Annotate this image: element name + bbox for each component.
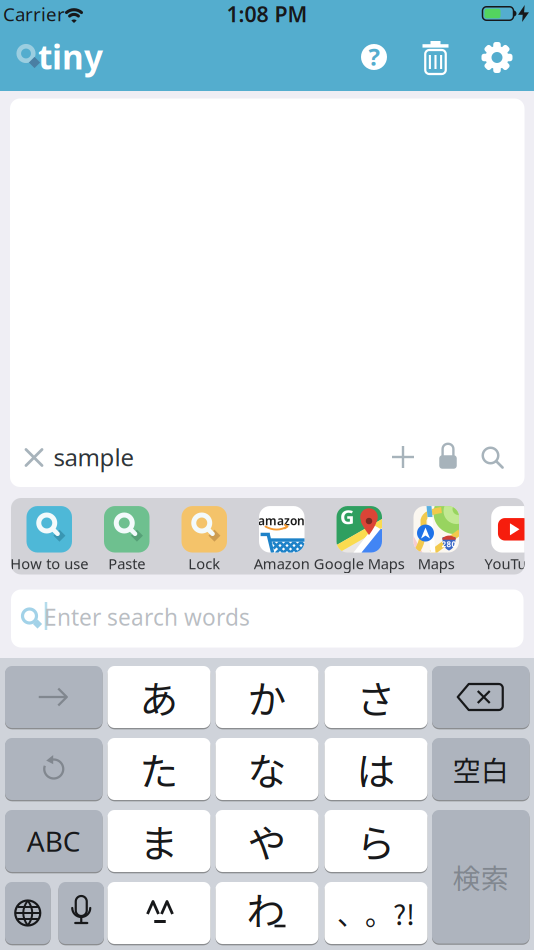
- button[interactable]: [415, 35, 455, 79]
- staticText: How to use: [10, 554, 88, 573]
- staticText: 検索: [453, 856, 509, 897]
- staticText: sample: [53, 441, 134, 473]
- staticText: た: [139, 741, 178, 797]
- button[interactable]: [5, 666, 102, 728]
- button[interactable]: How to use: [11, 498, 88, 574]
- staticText: さ: [356, 669, 395, 725]
- staticText: は: [356, 741, 395, 797]
- staticText: Google Maps: [314, 554, 405, 573]
- button[interactable]: [476, 441, 510, 475]
- staticText: 1:08 PM: [226, 0, 307, 28]
- button[interactable]: Lock: [166, 498, 243, 574]
- button[interactable]: [431, 441, 465, 475]
- staticText: Enter search words: [44, 602, 250, 632]
- staticText: か: [247, 669, 286, 725]
- button[interactable]: は: [324, 738, 427, 800]
- staticText: 280: [441, 539, 456, 549]
- staticText: や: [247, 813, 286, 869]
- button[interactable]: ま: [107, 810, 210, 872]
- button[interactable]: G: [321, 498, 398, 574]
- staticText: amazon: [258, 513, 305, 528]
- button[interactable]: な: [215, 738, 318, 800]
- staticText: な: [247, 741, 286, 797]
- button[interactable]: た: [107, 738, 210, 800]
- button[interactable]: 280: [398, 498, 475, 574]
- button[interactable]: か: [215, 666, 318, 728]
- staticText: わ: [246, 881, 285, 937]
- staticText: あ: [139, 669, 178, 725]
- button[interactable]: [481, 41, 513, 73]
- staticText: Carrier: [3, 2, 65, 26]
- staticText: 、。?!: [337, 893, 415, 933]
- staticText: Maps: [418, 554, 455, 573]
- button[interactable]: 検索: [432, 810, 529, 943]
- staticText: Lock: [188, 554, 220, 573]
- staticText: ま: [139, 813, 178, 869]
- staticText: tiny: [38, 34, 103, 79]
- staticText: ら: [356, 813, 395, 869]
- button[interactable]: あ: [107, 666, 210, 728]
- button[interactable]: や: [215, 810, 318, 872]
- button[interactable]: 、。?!: [324, 882, 427, 944]
- staticText: Paste: [108, 554, 145, 573]
- button[interactable]: Enter search words: [11, 589, 523, 647]
- staticText: G: [340, 503, 354, 530]
- button[interactable]: ?: [354, 37, 394, 77]
- staticText: ?: [368, 41, 379, 72]
- button[interactable]: amazon: [243, 498, 320, 574]
- staticText: YouTube: [484, 554, 534, 573]
- button[interactable]: YouTube: [475, 498, 534, 574]
- staticText: ABC: [27, 822, 81, 860]
- button[interactable]: Paste: [88, 498, 165, 574]
- staticText: Amazon: [254, 554, 310, 573]
- button[interactable]: ら: [324, 810, 427, 872]
- button[interactable]: [16, 439, 52, 475]
- button[interactable]: [107, 882, 210, 944]
- button[interactable]: 空白: [432, 738, 529, 800]
- button[interactable]: わ: [215, 882, 318, 944]
- staticText: 空白: [453, 749, 509, 789]
- button[interactable]: [5, 882, 50, 944]
- button[interactable]: [5, 738, 102, 800]
- button[interactable]: ABC: [5, 810, 102, 872]
- button[interactable]: [58, 882, 104, 944]
- button[interactable]: さ: [324, 666, 427, 728]
- button[interactable]: [386, 440, 420, 474]
- button[interactable]: [432, 666, 529, 728]
